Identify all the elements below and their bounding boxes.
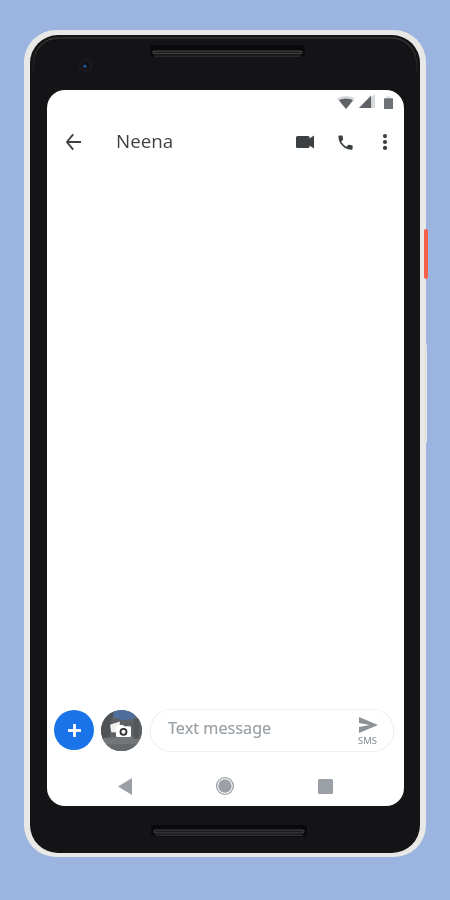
button[interactable]: Text message [150,709,394,752]
button[interactable]: Recent apps [305,766,345,806]
button[interactable]: Back [105,766,145,806]
button[interactable]: Add attachment [54,710,94,750]
button[interactable]: Call [325,122,365,162]
button[interactable]: Home [205,766,245,806]
button[interactable]: Video call [285,122,325,162]
staticText: SMS [358,734,378,747]
button[interactable]: Camera [101,710,142,751]
button[interactable]: More options [365,122,404,162]
staticText: Text message [168,717,272,739]
button[interactable]: Back [51,120,95,164]
staticText: Neena [116,128,174,153]
